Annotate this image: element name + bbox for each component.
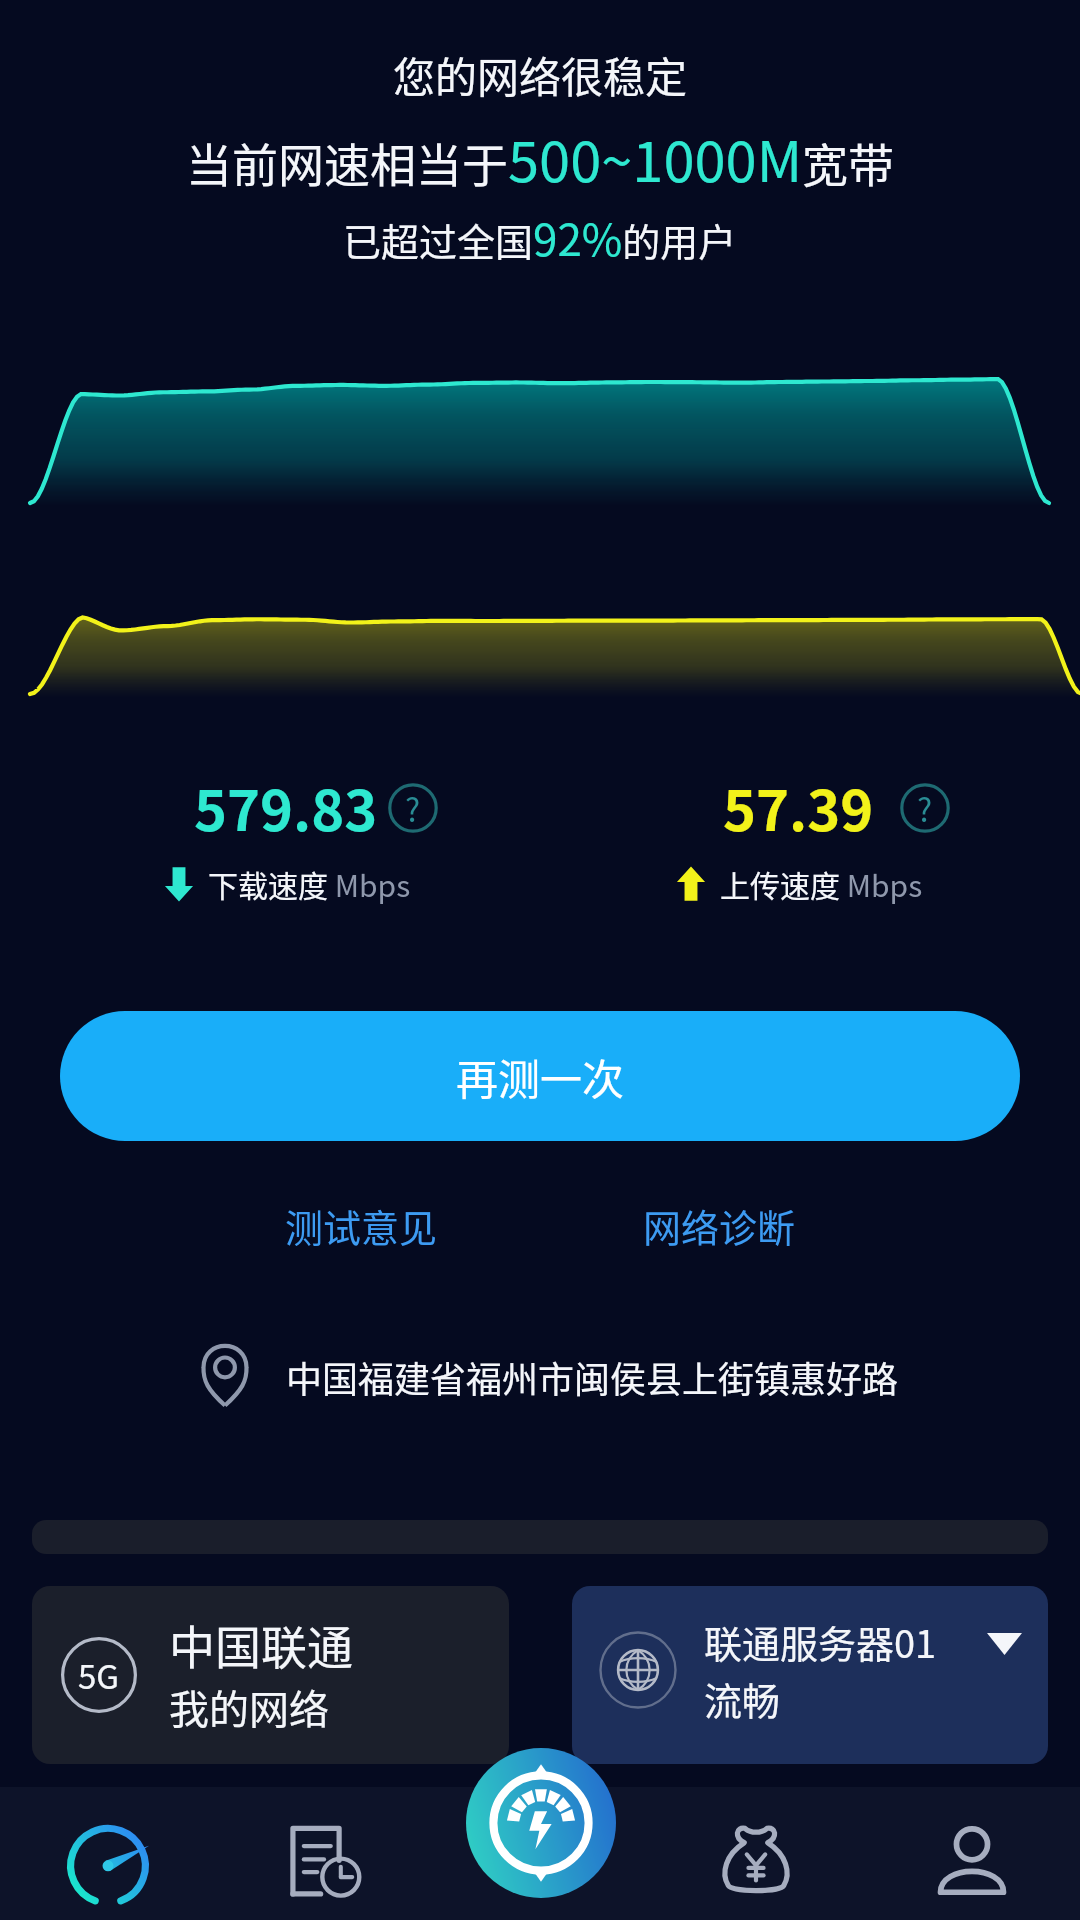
button[interactable]: 说明 <box>900 783 950 833</box>
button[interactable]: 测速 <box>0 1787 216 1920</box>
staticText: ? <box>917 785 933 831</box>
button[interactable]: 我的 <box>864 1787 1080 1920</box>
staticText: 5G <box>78 1651 120 1699</box>
button[interactable]: 测试意见 <box>285 1198 438 1253</box>
button[interactable]: 说明 <box>388 783 438 833</box>
button[interactable]: 圆觉 <box>648 1787 864 1920</box>
staticText: 再测一次 <box>456 1046 625 1107</box>
button[interactable]: 5G <box>32 1586 509 1764</box>
button[interactable]: 再测一次 <box>60 1011 1020 1141</box>
staticText: 下载速度 Mbps <box>208 862 411 905</box>
staticText: 579.83 <box>194 766 378 847</box>
staticText: 我的网络 <box>169 1678 329 1736</box>
staticText: 中国联通 <box>169 1611 353 1678</box>
staticText: 已超过全国92%的用户 <box>343 205 737 269</box>
staticText: 联通服务器01 <box>704 1614 937 1669</box>
staticText: 您的网络很稳定 <box>393 44 688 105</box>
button[interactable]: 联通服务器01 <box>572 1586 1048 1764</box>
staticText: 当前网速相当于500~1000M宽带 <box>186 117 895 198</box>
button[interactable]: 开始测速 <box>466 1748 616 1898</box>
staticText: 中国福建省福州市闽侯县上街镇惠好路 <box>286 1351 899 1403</box>
button[interactable]: 网络诊断 <box>643 1198 796 1253</box>
button[interactable]: 历史 <box>216 1787 432 1920</box>
staticText: 网络诊断 <box>643 1198 796 1253</box>
staticText: ? <box>405 785 421 831</box>
staticText: 流畅 <box>704 1671 781 1726</box>
staticText: 上传速度 Mbps <box>720 862 923 905</box>
staticText: 测试意见 <box>285 1198 438 1253</box>
staticText: 57.39 <box>723 766 874 847</box>
button[interactable]: 中国福建省福州市闽侯县上街镇惠好路 <box>9 1346 1080 1408</box>
